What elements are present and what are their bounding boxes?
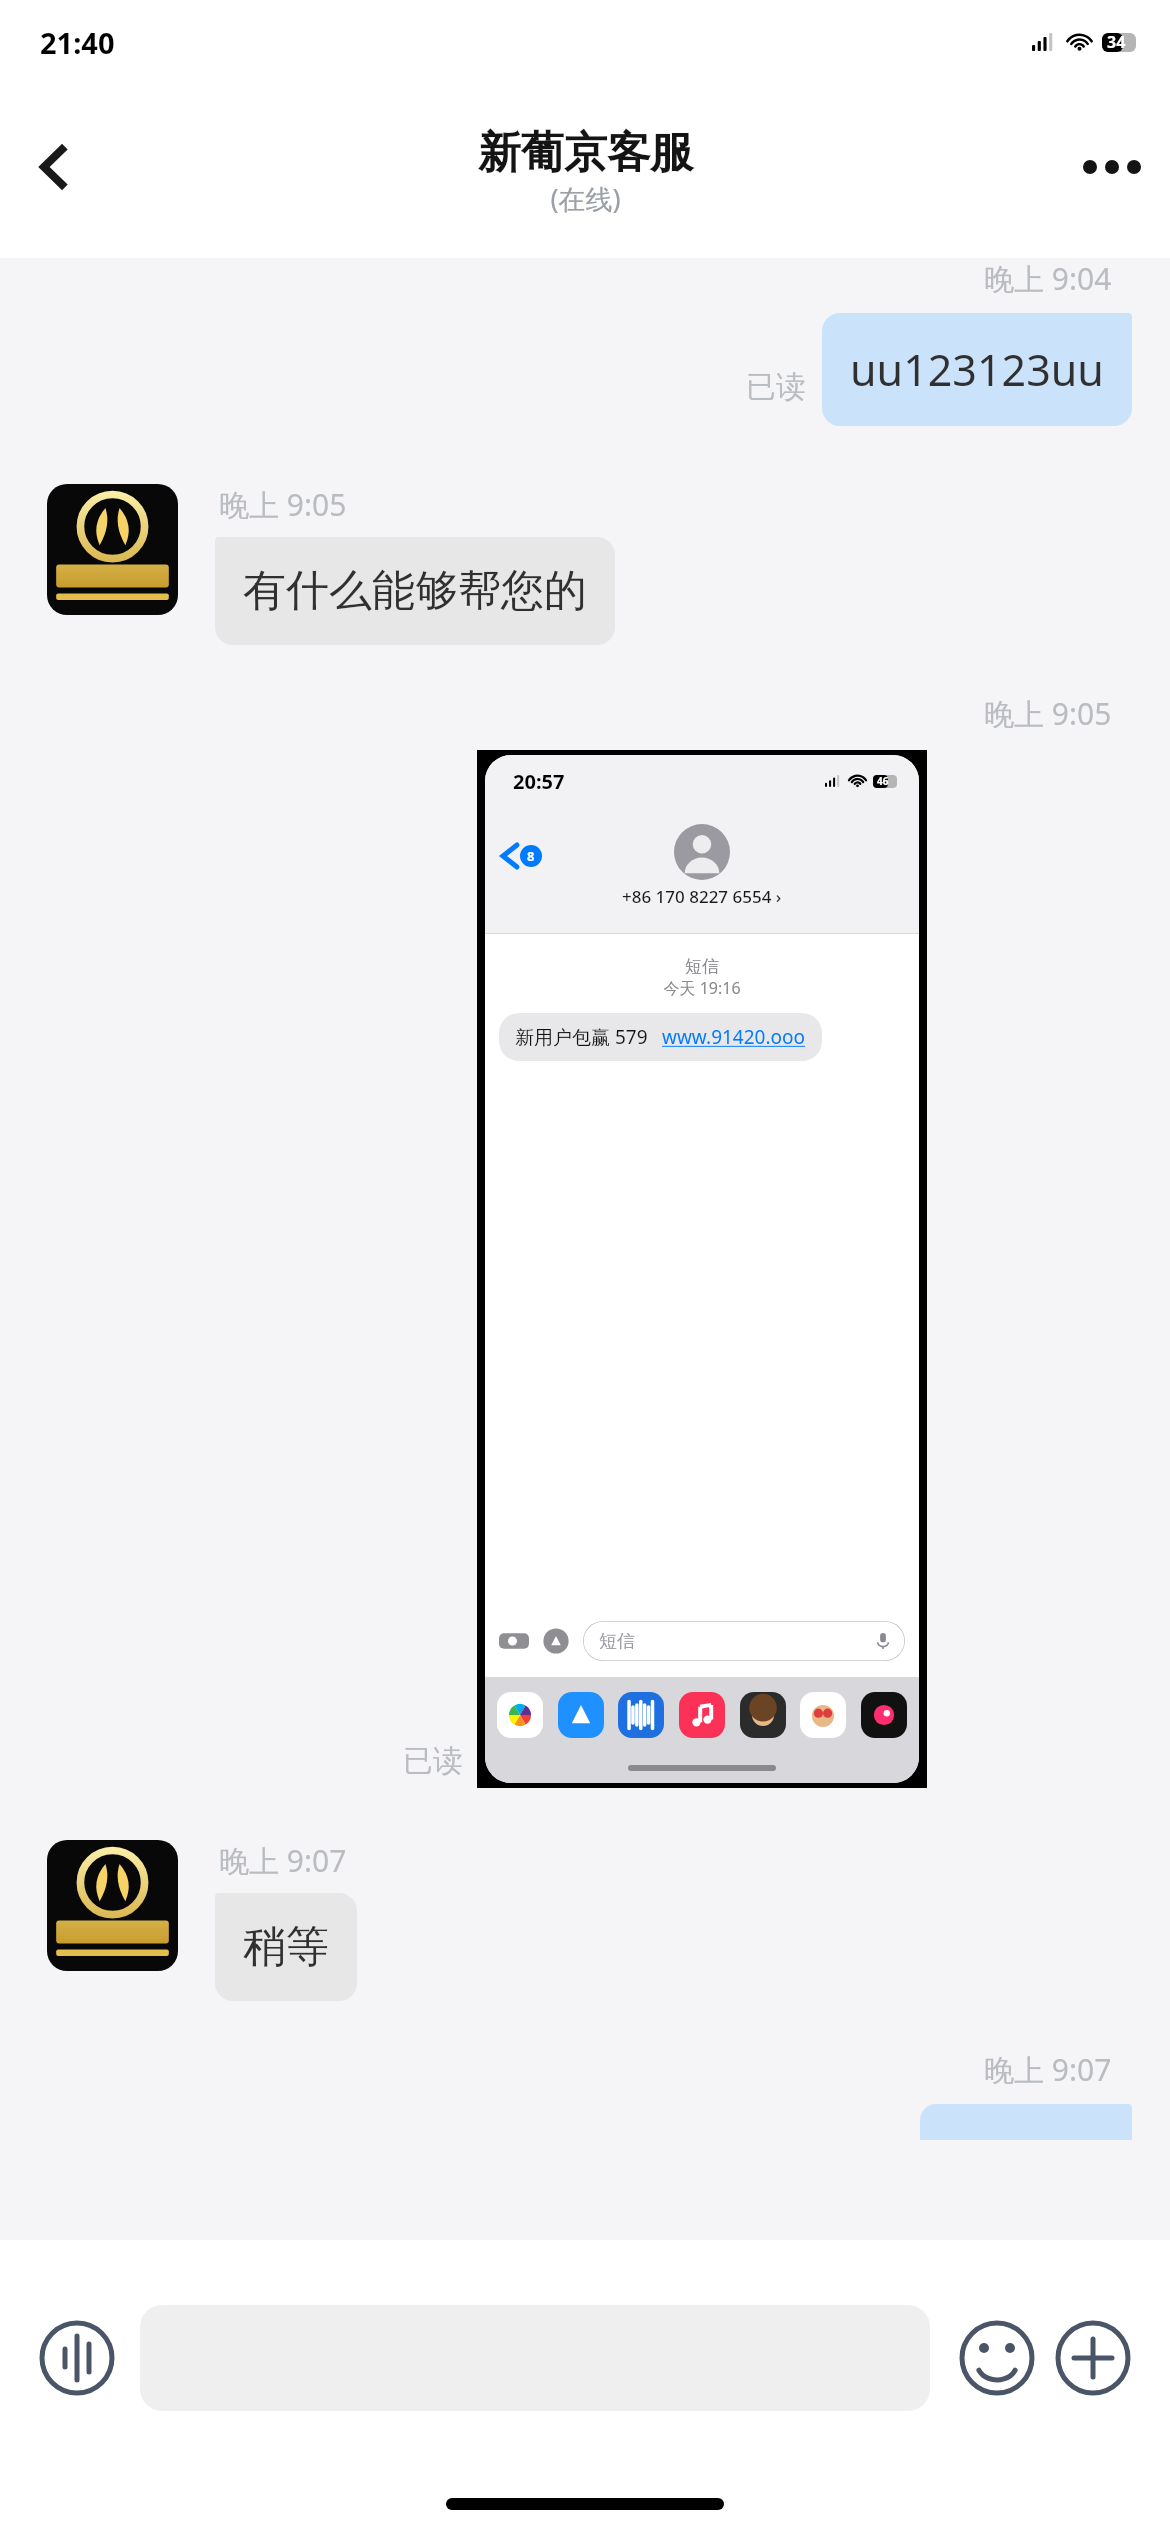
staticText: 20:57 bbox=[513, 768, 565, 795]
staticText: 晚上 9:04 bbox=[984, 258, 1112, 299]
staticText: 已读 bbox=[403, 1742, 463, 1780]
staticText: 稍等 bbox=[243, 1920, 329, 1974]
staticText: 34 bbox=[1107, 31, 1126, 53]
staticText: 有什么能够帮您的 bbox=[243, 564, 587, 618]
staticText: 已读 bbox=[746, 368, 806, 406]
button[interactable]: 有什么能够帮您的 bbox=[215, 537, 615, 645]
staticText: 晚上 9:05 bbox=[984, 693, 1112, 734]
button[interactable]: uu123123uu bbox=[822, 313, 1132, 426]
staticText: +86 170 8227 6554 › bbox=[622, 885, 782, 908]
button[interactable]: Emoji bbox=[960, 2321, 1034, 2395]
button[interactable]: Contact avatar bbox=[47, 1840, 178, 1971]
staticText: 8 bbox=[527, 847, 535, 865]
staticText: (在线) bbox=[550, 180, 621, 217]
staticText: 短信 bbox=[599, 1630, 635, 1653]
button[interactable]: More options bbox=[1070, 125, 1154, 209]
staticText: www.91420.ooo bbox=[662, 1024, 806, 1050]
button[interactable]: Voice input bbox=[40, 2321, 114, 2395]
button[interactable]: 稍等 bbox=[215, 1893, 357, 2001]
button[interactable] bbox=[920, 2104, 1132, 2140]
staticText: 晚上 9:05 bbox=[219, 484, 347, 525]
staticText: 晚上 9:07 bbox=[219, 1840, 347, 1881]
staticText: 新用户包赢 579 bbox=[515, 1024, 648, 1050]
button[interactable]: Shared screenshot bbox=[477, 750, 927, 1788]
staticText: uu123123uu bbox=[850, 340, 1104, 399]
staticText: 今天 19:16 bbox=[485, 977, 919, 999]
staticText: 21:40 bbox=[40, 23, 115, 62]
button[interactable]: Contact avatar bbox=[47, 484, 178, 615]
button[interactable]: Back bbox=[14, 127, 94, 207]
staticText: 46 bbox=[877, 774, 889, 788]
staticText: 新葡京客服 bbox=[478, 126, 693, 180]
staticText: 晚上 9:07 bbox=[984, 2049, 1112, 2090]
button[interactable]: Add attachment bbox=[1056, 2321, 1130, 2395]
staticText: 短信 bbox=[485, 956, 919, 977]
